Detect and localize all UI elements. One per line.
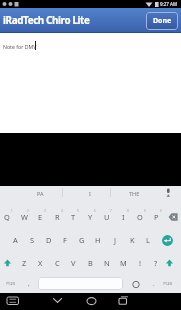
staticText: E bbox=[38, 212, 43, 222]
button[interactable]: Z bbox=[14, 257, 34, 269]
button[interactable]: Y bbox=[80, 211, 100, 223]
button[interactable] bbox=[38, 277, 123, 290]
button[interactable]: E bbox=[30, 211, 50, 223]
button[interactable]: 4 bbox=[58, 208, 66, 214]
button[interactable] bbox=[48, 294, 68, 309]
staticText: 7 bbox=[110, 209, 112, 213]
button[interactable]: Note for DMV bbox=[3, 40, 63, 52]
staticText: iRadTech Chiro Lite bbox=[3, 14, 90, 27]
staticText: 8 bbox=[127, 209, 129, 213]
staticText: J bbox=[114, 235, 117, 245]
button[interactable]: S bbox=[22, 234, 42, 246]
staticText: A bbox=[13, 235, 18, 245]
staticText: , bbox=[28, 280, 30, 288]
staticText: V bbox=[71, 258, 76, 268]
button[interactable]: 2 bbox=[24, 208, 32, 214]
button[interactable]: I bbox=[113, 211, 133, 223]
button[interactable]: R bbox=[47, 211, 67, 223]
staticText: Y bbox=[88, 212, 93, 222]
staticText: 0 bbox=[160, 209, 162, 213]
button[interactable]: 9 bbox=[141, 208, 149, 214]
button[interactable]: 5 bbox=[74, 208, 82, 214]
staticText: F bbox=[63, 235, 67, 245]
staticText: P bbox=[154, 212, 159, 222]
staticText: . bbox=[153, 280, 155, 288]
button[interactable]: ? bbox=[146, 257, 166, 269]
button[interactable]: H bbox=[88, 234, 108, 246]
staticText: K bbox=[130, 235, 135, 245]
button[interactable]: V bbox=[63, 257, 83, 269]
staticText: U bbox=[104, 212, 110, 222]
staticText: PA bbox=[37, 190, 44, 197]
button[interactable]: L bbox=[138, 234, 158, 246]
staticText: H bbox=[95, 235, 101, 245]
button[interactable]: Q bbox=[0, 211, 17, 223]
button[interactable]: B bbox=[80, 257, 100, 269]
button[interactable]: 0 bbox=[157, 208, 165, 214]
button[interactable]: , bbox=[19, 278, 39, 290]
staticText: ? bbox=[154, 258, 158, 268]
staticText: B bbox=[88, 258, 93, 268]
staticText: 9 bbox=[144, 209, 146, 213]
button[interactable]: ?123 bbox=[158, 278, 178, 290]
button[interactable]: G bbox=[72, 234, 92, 246]
button[interactable]: K bbox=[122, 234, 142, 246]
button[interactable]: U bbox=[97, 211, 117, 223]
button[interactable]: T bbox=[63, 211, 83, 223]
button[interactable]: F bbox=[55, 234, 75, 246]
button[interactable]: ! bbox=[130, 257, 150, 269]
staticText: Done bbox=[153, 16, 172, 26]
staticText: 9:27 AM bbox=[160, 1, 178, 7]
button[interactable]: ?123 bbox=[1, 278, 21, 290]
button[interactable]: C bbox=[47, 257, 67, 269]
staticText: S bbox=[30, 235, 35, 245]
staticText: C bbox=[55, 258, 60, 268]
staticText: O bbox=[137, 212, 143, 222]
staticText: ?123 bbox=[6, 281, 16, 287]
staticText: G bbox=[79, 235, 85, 245]
staticText: Q bbox=[4, 212, 10, 222]
button[interactable]: 7 bbox=[107, 208, 115, 214]
button[interactable]: PA bbox=[30, 187, 50, 199]
button[interactable]: 6 bbox=[91, 208, 99, 214]
button[interactable]: 3 bbox=[41, 208, 49, 214]
button[interactable] bbox=[82, 294, 102, 309]
staticText: I bbox=[89, 190, 91, 197]
button[interactable]: 9:27 AM bbox=[156, 0, 181, 8]
button[interactable]: THE bbox=[124, 187, 144, 199]
staticText: X bbox=[38, 258, 43, 268]
button[interactable]: N bbox=[97, 257, 117, 269]
button[interactable]: I bbox=[80, 187, 100, 199]
button[interactable]: . bbox=[144, 278, 164, 290]
staticText: T bbox=[71, 212, 76, 222]
button[interactable] bbox=[113, 294, 133, 309]
button[interactable]: X bbox=[30, 257, 50, 269]
button[interactable]: Done bbox=[146, 12, 178, 30]
staticText: THE bbox=[129, 190, 140, 197]
staticText: I bbox=[122, 212, 125, 222]
staticText: 2 bbox=[27, 209, 29, 213]
staticText: W bbox=[21, 212, 28, 222]
button[interactable]: A bbox=[5, 234, 25, 246]
staticText: ! bbox=[139, 258, 141, 268]
staticText: L bbox=[146, 235, 150, 245]
staticText: N bbox=[104, 258, 110, 268]
staticText: D bbox=[46, 235, 52, 245]
staticText: 3 bbox=[44, 209, 46, 213]
staticText: M bbox=[120, 258, 127, 268]
staticText: R bbox=[55, 212, 60, 222]
staticText: 4 bbox=[61, 209, 63, 213]
staticText: Z bbox=[22, 258, 27, 268]
button[interactable]: 1 bbox=[8, 208, 16, 214]
button[interactable]: W bbox=[14, 211, 34, 223]
staticText: Note for DMV bbox=[3, 43, 37, 50]
button[interactable]: 8 bbox=[124, 208, 132, 214]
staticText: 1 bbox=[11, 209, 13, 213]
button[interactable]: M bbox=[113, 257, 133, 269]
staticText: 5 bbox=[77, 209, 79, 213]
button[interactable]: O bbox=[130, 211, 150, 223]
staticText: ?123 bbox=[163, 281, 173, 287]
button[interactable]: P bbox=[146, 211, 166, 223]
button[interactable]: D bbox=[39, 234, 59, 246]
button[interactable]: J bbox=[105, 234, 125, 246]
